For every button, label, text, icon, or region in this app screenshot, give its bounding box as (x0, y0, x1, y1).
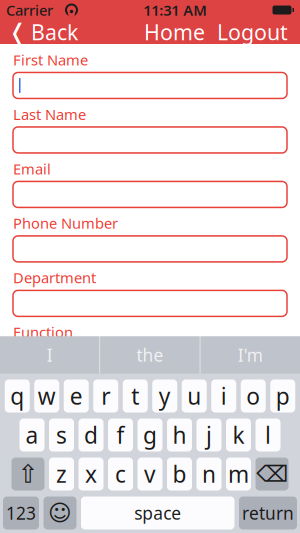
button[interactable]: v (137, 457, 162, 490)
button[interactable]: I'm (201, 336, 300, 373)
button[interactable]: a (19, 418, 44, 451)
staticText: z (56, 459, 67, 489)
staticText: c (115, 459, 126, 489)
button[interactable]: u (182, 379, 207, 412)
button[interactable]: Logout (211, 16, 294, 48)
button[interactable]: I (0, 336, 99, 373)
staticText: o (246, 381, 260, 411)
staticText: First Name (13, 50, 88, 69)
button[interactable]: q (5, 379, 30, 412)
button[interactable]: d (78, 418, 103, 451)
staticText: Function (13, 322, 73, 342)
button[interactable]: f (108, 418, 133, 451)
staticText: q (10, 381, 24, 411)
staticText: Logout (217, 18, 288, 46)
staticText: ⌫ (256, 461, 288, 487)
staticText: i (221, 381, 227, 411)
button[interactable]: n (196, 457, 221, 490)
button[interactable]: 123 (3, 496, 39, 529)
button[interactable]: the (100, 336, 200, 373)
staticText: g (143, 420, 157, 450)
button[interactable]: t (123, 379, 148, 412)
staticText: y (159, 381, 171, 411)
button[interactable]: l (255, 418, 280, 451)
staticText: l (265, 420, 271, 450)
staticText: Department (13, 268, 96, 287)
button[interactable]: y (152, 379, 177, 412)
button[interactable]: p (270, 379, 295, 412)
button[interactable]: c (108, 457, 133, 490)
staticText: p (276, 381, 290, 411)
staticText: s (56, 420, 67, 450)
button[interactable]: Delete (255, 457, 288, 490)
staticText: Phone Number (13, 213, 118, 233)
staticText: space (134, 501, 181, 524)
staticText: I (47, 343, 53, 366)
staticText: I'm (238, 343, 263, 366)
staticText: b (172, 459, 186, 489)
staticText: Back (31, 18, 78, 46)
staticText: 123 (6, 501, 36, 524)
staticText: return (242, 501, 294, 524)
button[interactable]: Emoji (43, 496, 76, 529)
staticText: the (136, 343, 163, 366)
button[interactable]: b (167, 457, 192, 490)
button[interactable]: g (137, 418, 162, 451)
button[interactable]: Home (138, 16, 211, 48)
button[interactable]: h (167, 418, 192, 451)
button[interactable]: return (239, 496, 297, 529)
staticText: u (187, 381, 201, 411)
staticText: h (172, 420, 186, 450)
button[interactable]: ❬ (0, 16, 78, 48)
button[interactable]: z (49, 457, 74, 490)
button[interactable]: w (34, 379, 59, 412)
staticText: e (70, 381, 83, 411)
staticText: m (228, 459, 249, 489)
button[interactable]: x (78, 457, 103, 490)
staticText: a (25, 420, 38, 450)
staticText: w (38, 381, 56, 411)
staticText: Last Name (13, 104, 86, 124)
staticText: Email (13, 159, 51, 178)
staticText: t (131, 381, 139, 411)
staticText: r (101, 381, 110, 411)
staticText: x (85, 459, 97, 489)
staticText: ⇧ (17, 460, 38, 488)
button[interactable]: i (211, 379, 236, 412)
staticText: 11:31 AM (143, 0, 207, 20)
button[interactable]: k (226, 418, 251, 451)
staticText: f (116, 420, 124, 450)
button[interactable]: Shift (11, 457, 44, 490)
button[interactable]: m (226, 457, 251, 490)
button[interactable]: r (93, 379, 118, 412)
staticText: ☺ (48, 500, 72, 526)
staticText: v (144, 459, 156, 489)
staticText: n (202, 459, 216, 489)
button[interactable]: j (196, 418, 221, 451)
staticText: Home (144, 18, 205, 46)
staticText: Carrier (6, 0, 53, 20)
button[interactable]: e (64, 379, 89, 412)
staticText: d (84, 420, 98, 450)
button[interactable]: space (81, 496, 234, 529)
staticText (53, 0, 65, 25)
button[interactable]: s (49, 418, 74, 451)
staticText: j (206, 420, 212, 450)
staticText: ❬ (8, 19, 27, 45)
staticText: k (232, 420, 244, 450)
button[interactable]: o (241, 379, 266, 412)
